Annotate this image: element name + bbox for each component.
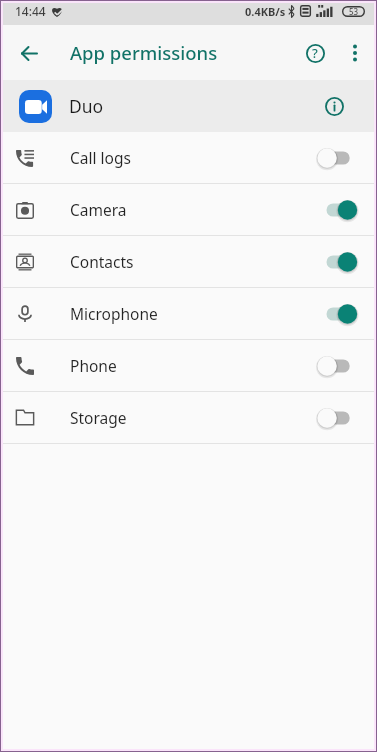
button[interactable]: Navigate up — [3, 26, 55, 80]
button[interactable]: Help — [294, 26, 336, 80]
button[interactable]: Allowed, on — [316, 193, 358, 227]
staticText: Call logs — [70, 147, 131, 168]
staticText: 53 — [349, 6, 359, 17]
staticText: 14:44 — [15, 3, 46, 19]
button[interactable]: Camera — [3, 184, 374, 235]
staticText: Phone — [70, 355, 117, 376]
button[interactable]: Allowed, on — [316, 297, 358, 331]
button[interactable]: Denied, off — [316, 401, 358, 435]
button[interactable]: App info — [320, 92, 348, 120]
button[interactable]: Duo — [3, 80, 374, 132]
staticText: Storage — [70, 407, 127, 428]
button[interactable]: Phone — [3, 340, 374, 391]
staticText: ? — [312, 44, 318, 62]
button[interactable]: Storage — [3, 392, 374, 443]
button[interactable]: Call logs — [3, 132, 374, 183]
button[interactable]: Contacts — [3, 236, 374, 287]
button[interactable]: Denied, off — [316, 141, 358, 175]
staticText: App permissions — [70, 40, 218, 65]
button[interactable]: Allowed, on — [316, 245, 358, 279]
staticText: Duo — [69, 94, 104, 118]
staticText: Microphone — [70, 303, 158, 324]
button[interactable]: Denied, off — [316, 349, 358, 383]
button[interactable]: More options — [336, 26, 374, 80]
staticText: 0.4KB/s — [245, 4, 286, 19]
staticText: Camera — [70, 199, 127, 220]
staticText: Contacts — [70, 251, 134, 272]
button[interactable]: Microphone — [3, 288, 374, 339]
